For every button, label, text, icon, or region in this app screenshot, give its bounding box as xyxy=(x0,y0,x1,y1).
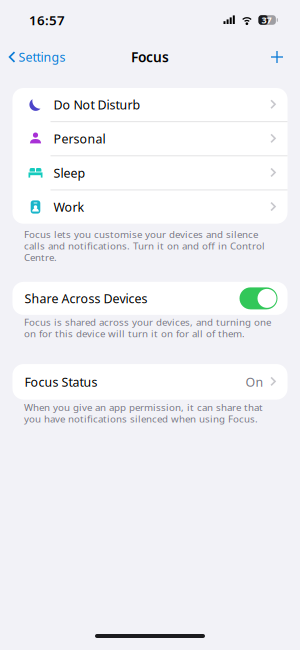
staticText: Personal xyxy=(53,130,105,147)
staticText: Work xyxy=(53,199,84,215)
staticText: Sleep xyxy=(53,164,85,181)
button[interactable]: Personal xyxy=(12,122,287,155)
staticText: Do Not Disturb xyxy=(53,96,140,113)
button[interactable]: Settings xyxy=(0,44,71,70)
staticText: Focus is shared across your devices, and… xyxy=(24,315,271,340)
staticText: Focus lets you customise your devices an… xyxy=(24,228,265,264)
staticText: On xyxy=(245,373,263,390)
staticText: Focus xyxy=(131,48,169,66)
staticText: 37 xyxy=(261,14,271,26)
staticText: When you give an app permission, it can … xyxy=(24,401,263,425)
button[interactable]: Add Focus xyxy=(262,44,292,70)
button[interactable]: Work xyxy=(12,190,287,224)
button[interactable]: Focus Status xyxy=(12,364,287,400)
staticText: Settings xyxy=(18,49,65,65)
staticText: Focus Status xyxy=(24,373,97,390)
staticText: 16:57 xyxy=(29,11,65,29)
button[interactable]: Sleep xyxy=(12,156,287,190)
button[interactable]: Do Not Disturb xyxy=(12,88,287,121)
button[interactable]: Share Across Devices xyxy=(239,287,277,309)
staticText: Share Across Devices xyxy=(24,290,147,307)
